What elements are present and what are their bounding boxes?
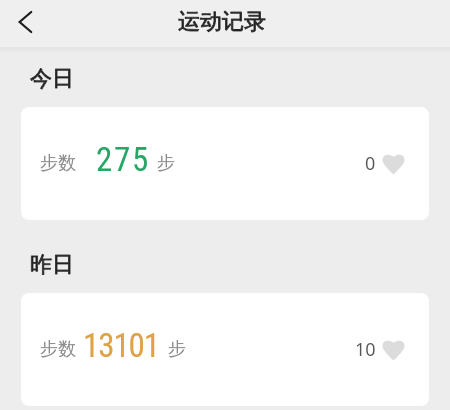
staticText: 10 — [355, 337, 376, 362]
staticText: 13101 — [83, 326, 159, 365]
staticText: 今日 — [30, 65, 74, 93]
staticText: 275 — [96, 140, 150, 179]
staticText: 昨日 — [30, 251, 74, 279]
staticText: 0 — [365, 151, 376, 176]
staticText: 步 — [168, 338, 186, 361]
staticText: 步数 — [40, 152, 76, 175]
button[interactable]: 步数 — [21, 293, 429, 406]
button[interactable]: Like — [365, 151, 405, 176]
staticText: 运动记录 — [178, 8, 266, 36]
staticText: 今日 — [30, 65, 74, 93]
button[interactable]: Like — [355, 337, 405, 362]
staticText: 昨日 — [30, 251, 74, 279]
button[interactable]: 步数 — [21, 107, 429, 220]
staticText: 步 — [157, 152, 175, 175]
staticText: 步数 — [40, 338, 76, 361]
button[interactable]: Back — [4, 2, 48, 46]
staticText: 运动记录 — [178, 8, 266, 36]
